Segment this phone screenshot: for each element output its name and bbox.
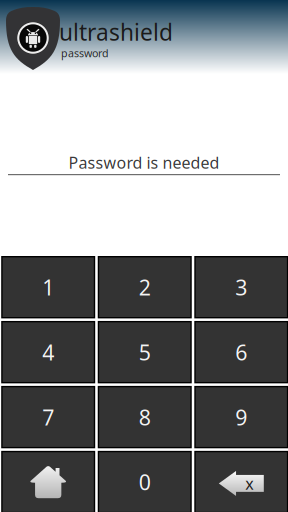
button[interactable]: 6	[194, 321, 288, 383]
staticText: 8	[139, 403, 151, 431]
staticText: 9	[235, 403, 247, 431]
staticText: x	[245, 473, 253, 494]
staticText: Password is needed	[68, 152, 219, 173]
button[interactable]: 2	[98, 256, 192, 318]
staticText: 7	[42, 403, 54, 431]
button[interactable]: 4	[1, 321, 95, 383]
button[interactable]: 7	[1, 386, 95, 448]
staticText: 2	[139, 273, 151, 301]
button[interactable]: 1	[1, 256, 95, 318]
staticText: 3	[235, 273, 247, 301]
button[interactable]: Backspace	[194, 451, 288, 512]
staticText: 4	[42, 338, 54, 366]
button[interactable]: 3	[194, 256, 288, 318]
staticText: ultrashield	[59, 17, 173, 47]
staticText: 6	[235, 338, 247, 366]
staticText: 1	[42, 273, 54, 301]
button[interactable]: Home	[1, 451, 95, 512]
staticText: password	[61, 46, 109, 60]
button[interactable]: 5	[98, 321, 192, 383]
staticText: 5	[139, 338, 151, 366]
button[interactable]: 8	[98, 386, 192, 448]
staticText: 0	[139, 468, 151, 496]
button[interactable]: 9	[194, 386, 288, 448]
button[interactable]: 0	[98, 451, 192, 512]
